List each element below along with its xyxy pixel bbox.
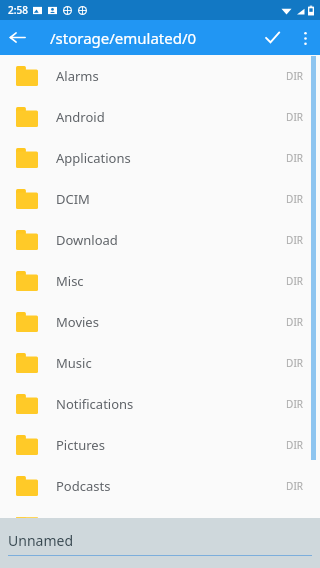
staticText: DIR [286,479,303,493]
staticText: DIR [286,315,303,329]
staticText: DIR [286,274,303,288]
button[interactable]: Applications [0,137,320,178]
button[interactable]: Music [0,342,320,383]
staticText: Notifications [56,395,286,413]
button[interactable]: Confirm [254,20,290,55]
staticText: DCIM [56,190,286,208]
staticText: DIR [286,69,303,83]
staticText: Movies [56,313,286,331]
staticText: DIR [286,192,303,206]
staticText: Unnamed [8,531,73,550]
button[interactable]: Android [0,96,320,137]
button[interactable]: Misc [0,260,320,301]
staticText: Podcasts [56,477,286,495]
button[interactable]: DCIM [0,178,320,219]
staticText: DIR [286,151,303,165]
button[interactable]: Pictures [0,424,320,465]
button[interactable]: Download [0,219,320,260]
staticText: Alarms [56,67,286,85]
staticText: DIR [286,110,303,124]
staticText: Download [56,231,286,249]
staticText: Music [56,354,286,372]
button[interactable]: More options [290,23,320,53]
staticText: /storage/emulated/0 [50,28,197,48]
staticText: DIR [286,438,303,452]
button[interactable]: Podcasts [0,465,320,506]
staticText: DIR [286,233,303,247]
button[interactable]: Movies [0,301,320,342]
staticText: Pictures [56,436,286,454]
staticText: Applications [56,149,286,167]
staticText: DIR [286,356,303,370]
button[interactable]: Back [0,20,35,55]
staticText: DIR [286,397,303,411]
button[interactable]: Notifications [0,383,320,424]
staticText: 2:58 [8,3,28,17]
button[interactable]: Alarms [0,55,320,96]
staticText: Misc [56,272,286,290]
staticText: Android [56,108,286,126]
